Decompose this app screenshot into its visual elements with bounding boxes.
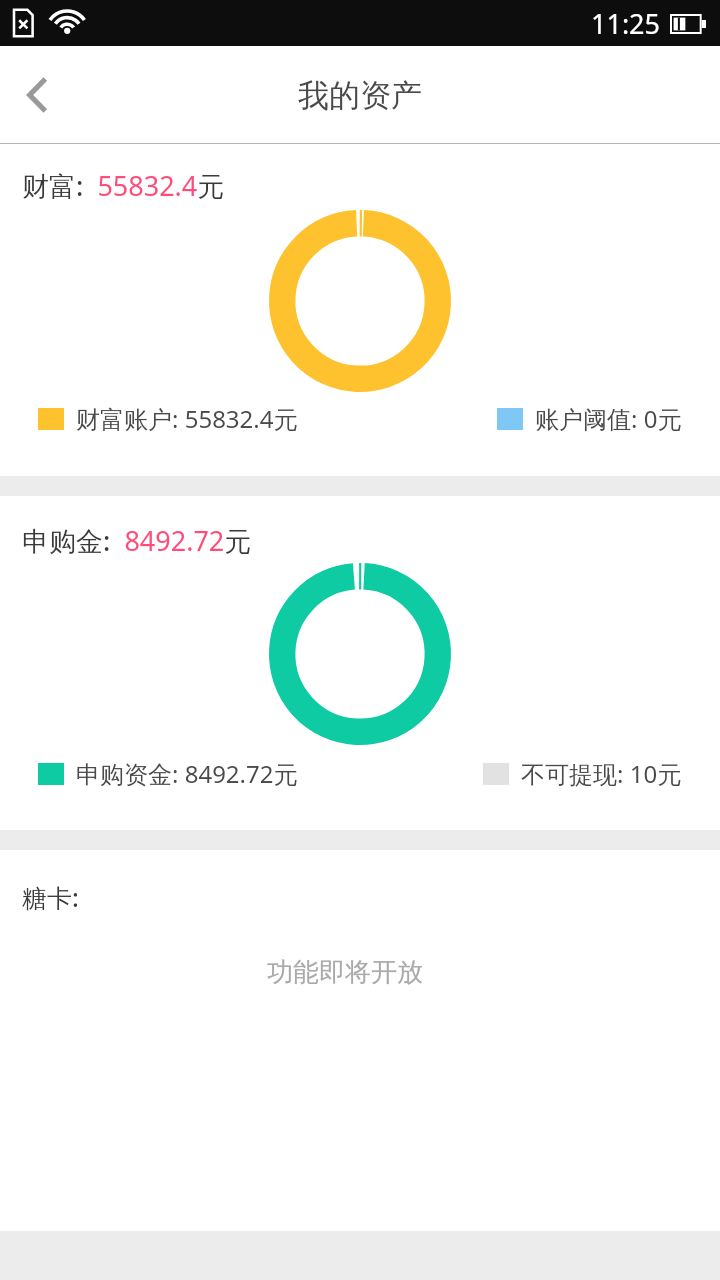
button[interactable]: Back [0, 57, 76, 133]
button[interactable]: 财富账户: 55832.4元 [38, 402, 298, 435]
staticText: 不可提现: 10元 [521, 757, 682, 790]
button[interactable]: 不可提现: 10元 [483, 757, 682, 790]
button[interactable]: 账户阈值: 0元 [497, 402, 682, 435]
staticText: 我的资产 [298, 76, 422, 115]
staticText: 账户阈值: 0元 [535, 402, 682, 435]
staticText: 申购资金: 8492.72元 [76, 757, 298, 790]
staticText: 功能即将开放 [267, 956, 423, 989]
staticText: 申购金: 8492.72元 [22, 522, 252, 559]
staticText: 糖卡: [22, 880, 79, 914]
staticText: 11:25 [591, 5, 661, 42]
staticText: 财富账户: 55832.4元 [76, 402, 298, 435]
staticText: 财富: 55832.4元 [22, 167, 225, 204]
button[interactable]: 申购资金: 8492.72元 [38, 757, 298, 790]
